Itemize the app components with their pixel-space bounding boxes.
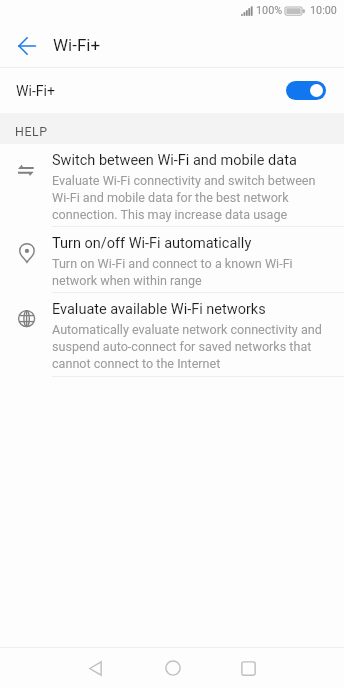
- staticText: HELP: [15, 124, 48, 139]
- staticText: Evaluate Wi-Fi connectivity and switch b…: [52, 172, 316, 223]
- button[interactable]: Wi-Fi+ toggle: [286, 81, 326, 100]
- staticText: Evaluate available Wi-Fi networks: [52, 301, 266, 318]
- button[interactable]: Wi-Fi+: [0, 68, 344, 113]
- staticText: Turn on Wi-Fi and connect to a known Wi-…: [52, 255, 293, 289]
- staticText: Wi-Fi+: [16, 83, 56, 100]
- staticText: Automatically evaluate network connectiv…: [52, 321, 322, 372]
- staticText: 100%: [256, 4, 283, 17]
- button[interactable]: Recent apps: [220, 648, 277, 688]
- button[interactable]: Back: [9, 28, 44, 63]
- staticText: Wi-Fi+: [53, 35, 101, 55]
- button[interactable]: Evaluate available Wi-Fi networks: [0, 293, 344, 377]
- button[interactable]: Switch between Wi-Fi and mobile data: [0, 144, 344, 227]
- button[interactable]: Back: [67, 648, 124, 688]
- staticText: Turn on/off Wi-Fi automatically: [52, 235, 252, 252]
- staticText: 10:00: [310, 4, 337, 17]
- staticText: Switch between Wi-Fi and mobile data: [52, 152, 297, 169]
- button[interactable]: Home: [144, 648, 201, 688]
- button[interactable]: Turn on/off Wi-Fi automatically: [0, 227, 344, 293]
